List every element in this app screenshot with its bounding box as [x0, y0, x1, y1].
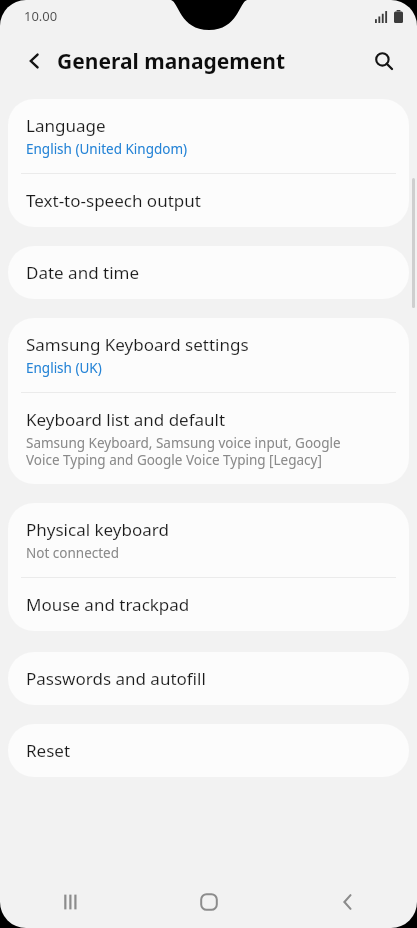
staticText: Text-to-speech output — [26, 189, 201, 212]
button[interactable]: Physical keyboard — [8, 503, 409, 577]
staticText: Passwords and autofill — [26, 667, 206, 690]
button[interactable]: Samsung Keyboard settings — [8, 318, 409, 392]
button[interactable]: Home — [139, 876, 278, 928]
staticText: Reset — [26, 739, 71, 762]
staticText: Keyboard list and default — [26, 408, 226, 431]
staticText: 10.00 — [24, 7, 58, 25]
button[interactable]: Reset — [8, 724, 409, 777]
staticText: Date and time — [26, 261, 140, 284]
button[interactable]: Back — [14, 40, 56, 82]
button[interactable]: Recent apps — [0, 876, 139, 928]
staticText: Mouse and trackpad — [26, 593, 190, 616]
staticText: General management — [57, 47, 286, 76]
staticText: Samsung Keyboard, Samsung voice input, G… — [26, 434, 341, 469]
button[interactable]: Passwords and autofill — [8, 652, 409, 705]
staticText: English (UK) — [26, 359, 102, 377]
button[interactable]: Language — [8, 99, 409, 173]
button[interactable]: Back — [278, 876, 417, 928]
staticText: Not connected — [26, 544, 120, 562]
button[interactable]: Search — [363, 40, 405, 82]
button[interactable]: Mouse and trackpad — [8, 578, 409, 631]
staticText: English (United Kingdom) — [26, 140, 188, 158]
staticText: Physical keyboard — [26, 518, 169, 541]
button[interactable]: Date and time — [8, 246, 409, 299]
button[interactable]: Text-to-speech output — [8, 174, 409, 227]
staticText: Language — [26, 114, 106, 137]
button[interactable]: Keyboard list and default — [8, 393, 409, 484]
staticText: Samsung Keyboard settings — [26, 333, 249, 356]
